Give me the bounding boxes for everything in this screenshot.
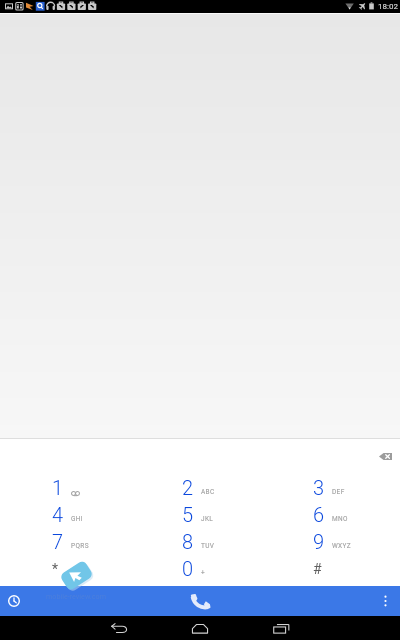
- button[interactable]: Home: [183, 616, 217, 640]
- button[interactable]: 8: [134, 527, 265, 554]
- staticText: 4: [52, 503, 64, 526]
- staticText: PQRS: [71, 542, 89, 550]
- staticText: +: [201, 569, 206, 577]
- staticText: 0: [182, 557, 194, 580]
- button[interactable]: 4: [4, 500, 134, 527]
- button[interactable]: Call history: [3, 590, 25, 612]
- staticText: 7: [52, 530, 64, 553]
- staticText: 6: [313, 503, 325, 526]
- staticText: 5: [182, 503, 194, 526]
- staticText: ABC: [201, 488, 215, 496]
- staticText: #: [313, 561, 322, 577]
- staticText: 8: [182, 530, 194, 553]
- button[interactable]: 9: [265, 527, 396, 554]
- staticText: 3: [313, 476, 325, 499]
- button[interactable]: 6: [265, 500, 396, 527]
- button[interactable]: Back: [102, 616, 136, 640]
- staticText: TUV: [201, 542, 215, 550]
- staticText: 1: [52, 476, 64, 499]
- button[interactable]: 5: [134, 500, 265, 527]
- button[interactable]: Call: [186, 587, 214, 615]
- button[interactable]: More options: [374, 590, 396, 612]
- button[interactable]: 3: [265, 473, 396, 500]
- button[interactable]: #: [265, 554, 396, 581]
- button[interactable]: 7: [4, 527, 134, 554]
- staticText: 2: [182, 476, 194, 499]
- staticText: *: [52, 561, 59, 577]
- staticText: mobile-review.com: [46, 592, 106, 600]
- staticText: JKL: [201, 515, 214, 523]
- button[interactable]: Backspace: [377, 449, 393, 463]
- staticText: GHI: [71, 515, 83, 523]
- button[interactable]: 2: [134, 473, 265, 500]
- button[interactable]: 0: [134, 554, 265, 581]
- staticText: WXYZ: [332, 542, 352, 550]
- staticText: 18:02: [378, 2, 398, 11]
- staticText: 9: [313, 530, 325, 553]
- staticText: MNO: [332, 515, 348, 523]
- button[interactable]: Recent apps: [265, 616, 299, 640]
- staticText: DEF: [332, 488, 345, 496]
- button[interactable]: 1: [4, 473, 134, 500]
- button[interactable]: *: [4, 554, 134, 581]
